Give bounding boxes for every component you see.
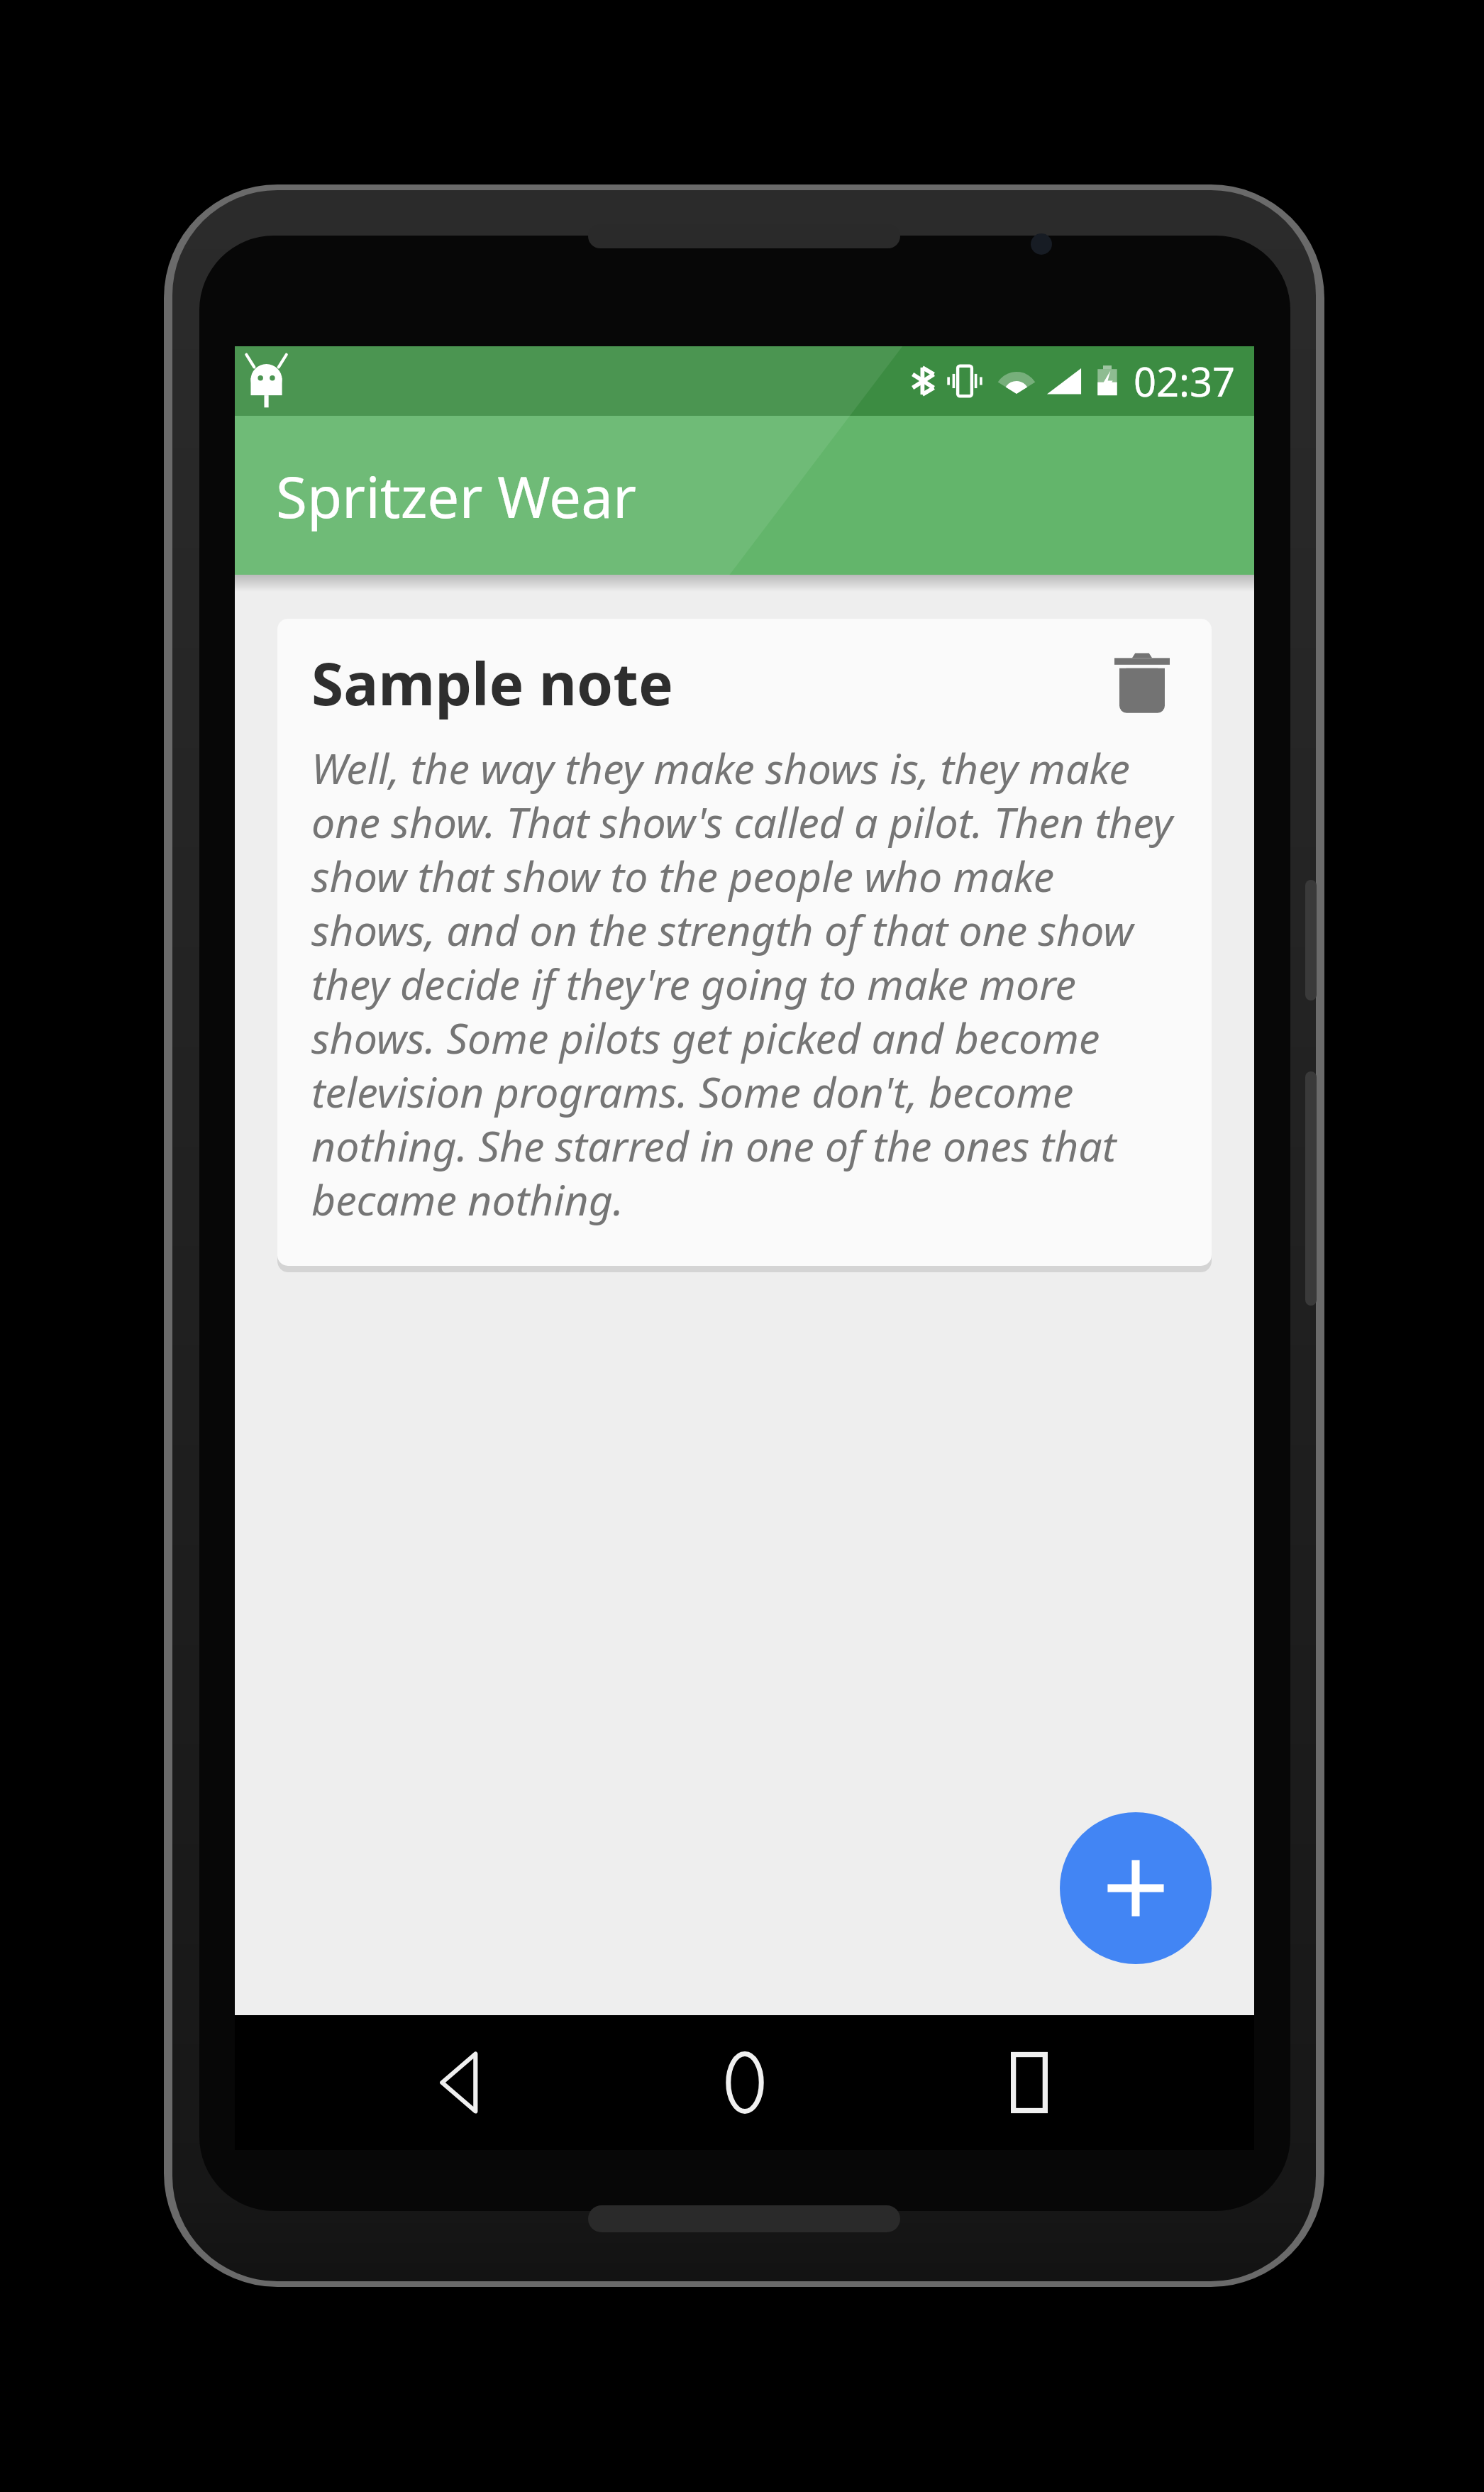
button[interactable]: Back xyxy=(399,2026,520,2139)
button[interactable]: Delete note xyxy=(1102,641,1182,724)
staticText: Sample note xyxy=(311,643,1102,722)
staticText: Well, the way they make shows is, they m… xyxy=(311,739,1182,1228)
staticText: Spritzer Wear xyxy=(276,457,637,534)
button[interactable]: Home xyxy=(685,2026,805,2139)
button[interactable]: Add note xyxy=(1060,1812,1212,1964)
button[interactable]: Recent apps xyxy=(969,2026,1090,2139)
staticText: 02:37 xyxy=(1134,354,1236,408)
button[interactable]: Sample note xyxy=(277,619,1212,1266)
